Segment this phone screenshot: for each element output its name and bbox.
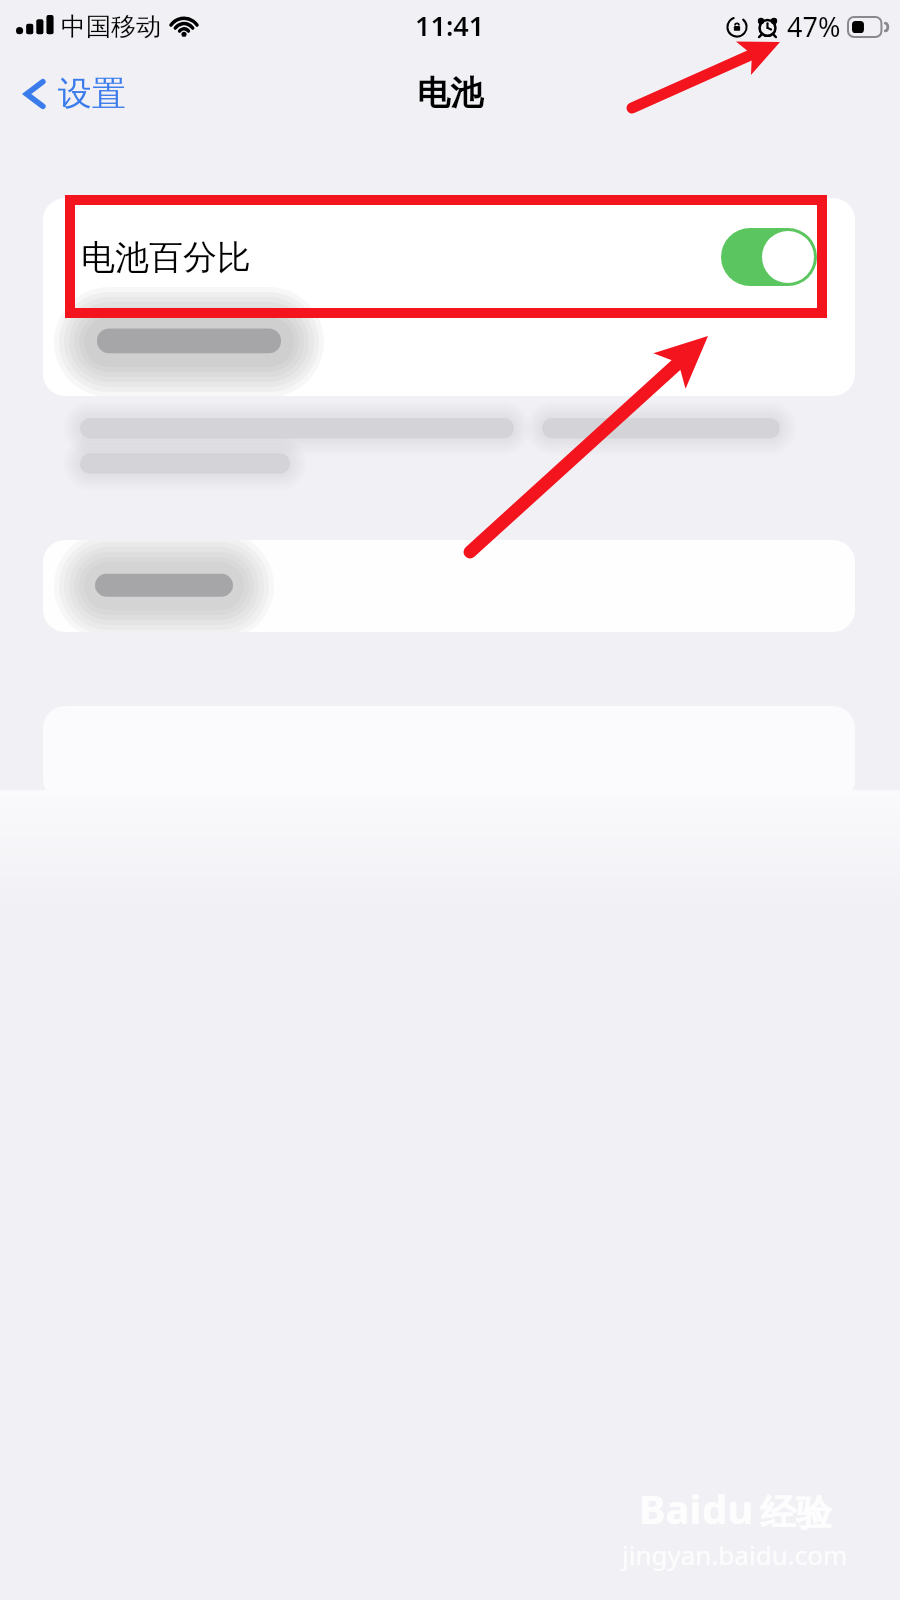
- staticText: 电池百分比: [81, 236, 251, 279]
- staticText: 11:41: [415, 7, 485, 44]
- staticText: Bai: [639, 1481, 702, 1535]
- staticText: 设置: [58, 72, 126, 115]
- staticText: du: [702, 1481, 754, 1535]
- staticText: 47%: [787, 8, 841, 45]
- button[interactable]: 电池百分比: [43, 198, 855, 316]
- button[interactable]: 电池百分比开关: [721, 228, 817, 286]
- button[interactable]: 设置: [0, 64, 140, 123]
- staticText: 电池: [417, 72, 483, 114]
- staticText: 中国移动: [61, 11, 161, 42]
- button[interactable]: [43, 540, 855, 632]
- staticText: jingyan.baidu.com: [622, 1537, 848, 1572]
- staticText: 经验: [760, 1490, 832, 1535]
